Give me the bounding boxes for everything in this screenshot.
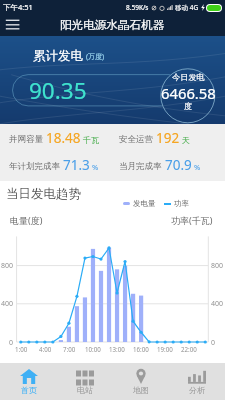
staticText: 地图 [133, 385, 149, 395]
staticText: 0 [211, 338, 216, 348]
staticText: 电量(度) [10, 214, 43, 226]
staticText: 天 [182, 135, 190, 145]
staticText: 90.35 [29, 75, 87, 106]
staticText: 6466.58 [161, 83, 216, 103]
staticText: 千瓦 [83, 135, 99, 145]
staticText: 22:00 [181, 345, 197, 353]
staticText: 度 [184, 101, 193, 111]
staticText: 下午4:51 [3, 2, 33, 12]
staticText: 安全运营 [119, 134, 153, 145]
staticText: 移动 4G [175, 3, 199, 12]
staticText: 4:00 [39, 345, 52, 353]
button[interactable]: 地图 [113, 363, 169, 400]
staticText: 首页 [21, 385, 37, 395]
staticText: 功率(千瓦) [171, 214, 213, 226]
staticText: 累计发电 [33, 48, 83, 64]
staticText: 800 [1, 261, 14, 271]
staticText: 年计划完成率 [9, 161, 60, 172]
staticText: 0 [9, 338, 14, 348]
button[interactable]: 电站 [57, 363, 113, 400]
staticText: 当月完成率 [119, 161, 162, 172]
staticText: 19:00 [157, 345, 173, 353]
staticText: (万度) [86, 52, 105, 62]
staticText: 并网容量 [9, 134, 43, 145]
staticText: 800 [211, 261, 224, 271]
staticText: 18.48 [46, 129, 81, 147]
staticText: 电站 [77, 385, 93, 395]
staticText: 71.3 [63, 156, 90, 174]
staticText: 当日发电趋势 [6, 186, 81, 202]
button[interactable]: Menu [2, 14, 24, 36]
staticText: % [92, 162, 99, 172]
button[interactable]: 分析 [169, 363, 225, 400]
staticText: 发电量 [133, 199, 156, 208]
staticText: % [194, 162, 201, 172]
staticText: 13:00 [109, 345, 125, 353]
staticText: 8.59K/s [126, 3, 149, 12]
staticText: 10:00 [85, 345, 101, 353]
staticText: 阳光电源水晶石机器 [60, 18, 165, 33]
staticText: 400 [211, 299, 224, 309]
staticText: 分析 [189, 385, 205, 395]
staticText: 70.9 [165, 156, 192, 174]
staticText: 1:00 [15, 345, 28, 353]
staticText: 16:00 [133, 345, 149, 353]
staticText: 今日发电 [172, 72, 205, 82]
staticText: 7:00 [63, 345, 76, 353]
staticText: 192 [156, 129, 180, 147]
staticText: 功率 [174, 199, 189, 208]
staticText: 400 [1, 299, 14, 309]
button[interactable]: 首页 [0, 363, 57, 400]
